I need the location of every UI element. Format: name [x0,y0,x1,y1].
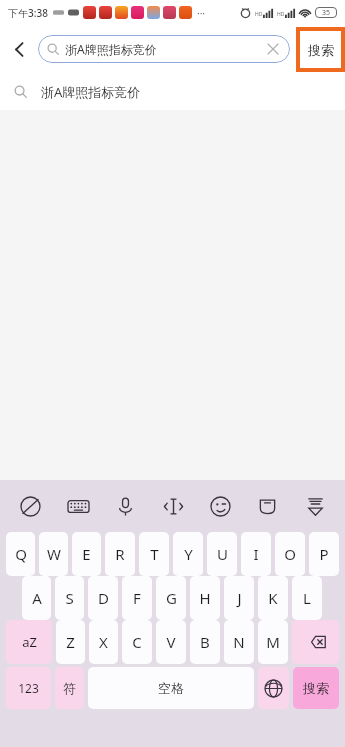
button[interactable]: D [88,576,118,620]
staticText: 符 [63,680,76,696]
button[interactable]: 删除 [292,620,339,664]
staticText: K [268,588,278,608]
staticText: G [166,588,177,608]
button[interactable]: X [89,620,118,664]
staticText: 搜索 [308,42,334,58]
button[interactable]: 搜索 [293,667,339,709]
staticText: B [200,632,210,652]
button[interactable]: F [122,576,152,620]
button[interactable]: L [292,576,322,620]
button[interactable]: C [122,620,152,664]
button[interactable]: N [224,620,254,664]
staticText: 下午3:38 [8,6,48,20]
button[interactable]: O [275,532,305,576]
button[interactable]: S [55,576,84,620]
button[interactable]: G [156,576,186,620]
button[interactable]: 剪贴板 [250,489,284,523]
staticText: 浙A牌照指标竞价 [41,83,141,101]
staticText: F [133,588,141,608]
button[interactable]: 切换语言 [258,667,289,709]
button[interactable]: 清除 [265,41,281,57]
button[interactable]: 符 [55,667,84,709]
button[interactable]: 输入法 [13,489,47,523]
button[interactable]: 收起键盘 [298,489,332,523]
button[interactable]: Q [6,532,35,576]
button[interactable]: M [258,620,288,664]
staticText: 浙A牌照指标竞价 [65,41,157,57]
staticText: ··· [197,6,206,20]
staticText: S [65,588,74,608]
button[interactable]: P [309,532,339,576]
button[interactable]: 键盘设置 [61,489,95,523]
staticText: A [32,588,42,608]
staticText: Z [66,632,75,652]
button[interactable]: 空格 [88,667,254,709]
button[interactable]: T [139,532,169,576]
staticText: H [199,588,211,608]
button[interactable]: E [72,532,101,576]
staticText: O [284,544,296,564]
button[interactable]: I [241,532,271,576]
button[interactable]: A [22,576,51,620]
button[interactable]: U [207,532,237,576]
staticText: D [98,588,109,608]
button[interactable]: H [190,576,220,620]
button[interactable]: W [39,532,68,576]
button[interactable]: 语音输入 [108,489,142,523]
staticText: 35 [322,8,331,18]
button[interactable]: 表情 [203,489,237,523]
staticText: Q [15,544,27,564]
button[interactable]: 浙A牌照指标竞价 [0,73,345,110]
staticText: Y [184,544,193,564]
button[interactable]: Z [56,620,85,664]
staticText: T [150,544,159,564]
staticText: HD [255,11,263,18]
staticText: J [237,588,242,608]
button[interactable]: B [190,620,220,664]
staticText: E [82,544,91,564]
button[interactable]: 光标移动 [156,489,190,523]
staticText: HD [277,11,285,18]
button[interactable]: R [105,532,135,576]
staticText: W [47,544,61,564]
button[interactable]: aZ [6,620,52,664]
staticText: V [166,632,176,652]
staticText: R [115,544,125,564]
button[interactable]: Y [173,532,203,576]
staticText: M [266,632,280,652]
staticText: 空格 [158,680,184,696]
staticText: P [319,544,329,564]
staticText: aZ [22,633,37,651]
button[interactable]: 搜索 [300,31,341,68]
staticText: 搜索 [303,680,329,696]
staticText: I [253,544,259,564]
button[interactable]: 123 [6,667,51,709]
button[interactable]: V [156,620,186,664]
button[interactable]: 返回 [0,25,38,73]
staticText: X [99,632,108,652]
button[interactable]: J [224,576,254,620]
staticText: 123 [18,680,39,696]
staticText: C [132,632,142,652]
button[interactable]: 浙A牌照指标竞价 [38,35,290,63]
button[interactable]: K [258,576,288,620]
staticText: N [233,632,245,652]
staticText: U [217,544,228,564]
staticText: L [303,588,311,608]
